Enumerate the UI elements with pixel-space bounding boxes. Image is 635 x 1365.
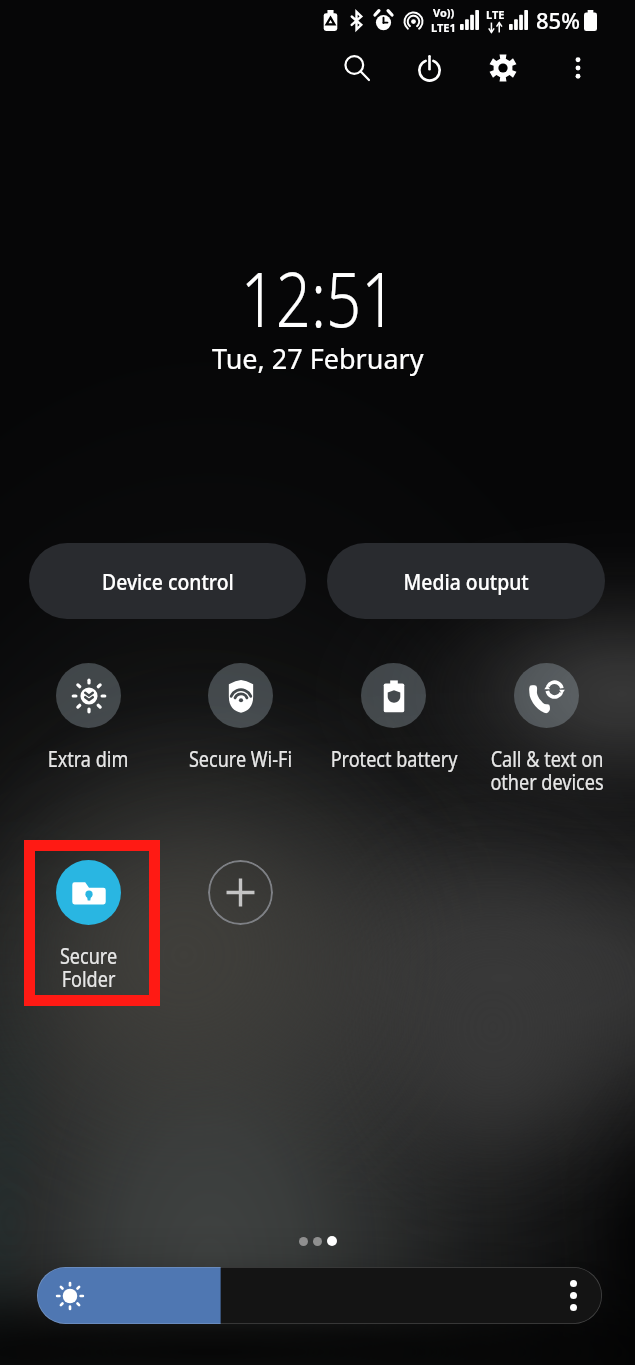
button[interactable]: Protect battery <box>317 663 470 774</box>
button[interactable] <box>313 1237 322 1246</box>
button[interactable]: Device control <box>29 543 306 619</box>
button[interactable]: Settings <box>480 45 526 91</box>
button[interactable]: Add <box>208 860 273 925</box>
button[interactable]: Search <box>334 45 380 91</box>
staticText: 85% <box>536 5 580 35</box>
button[interactable]: Call & text on other devices <box>470 663 623 796</box>
staticText: LTE <box>486 7 505 22</box>
staticText: Device control <box>102 566 234 596</box>
button[interactable] <box>327 1236 337 1246</box>
staticText: Secure Wi-Fi <box>188 745 293 774</box>
button[interactable] <box>37 1267 602 1324</box>
staticText: LTE1 <box>431 20 456 35</box>
staticText: Protect battery <box>330 745 458 774</box>
button[interactable]: Media output <box>327 543 605 619</box>
staticText: Extra dim <box>48 745 128 774</box>
staticText: Vo)) <box>433 5 455 20</box>
staticText: 12:51 <box>240 246 397 332</box>
button[interactable]: Power <box>406 45 452 91</box>
staticText: Secure Folder <box>60 942 117 993</box>
staticText: Call & text on other devices <box>490 745 604 796</box>
staticText: Media output <box>404 566 529 596</box>
button[interactable]: Extra dim <box>12 663 164 774</box>
button[interactable]: Secure Folder <box>24 840 160 1006</box>
button[interactable]: Secure Wi-Fi <box>164 663 317 774</box>
staticText: Tue, 27 February <box>212 340 424 377</box>
button[interactable] <box>299 1237 308 1246</box>
button[interactable]: More options <box>555 45 601 91</box>
